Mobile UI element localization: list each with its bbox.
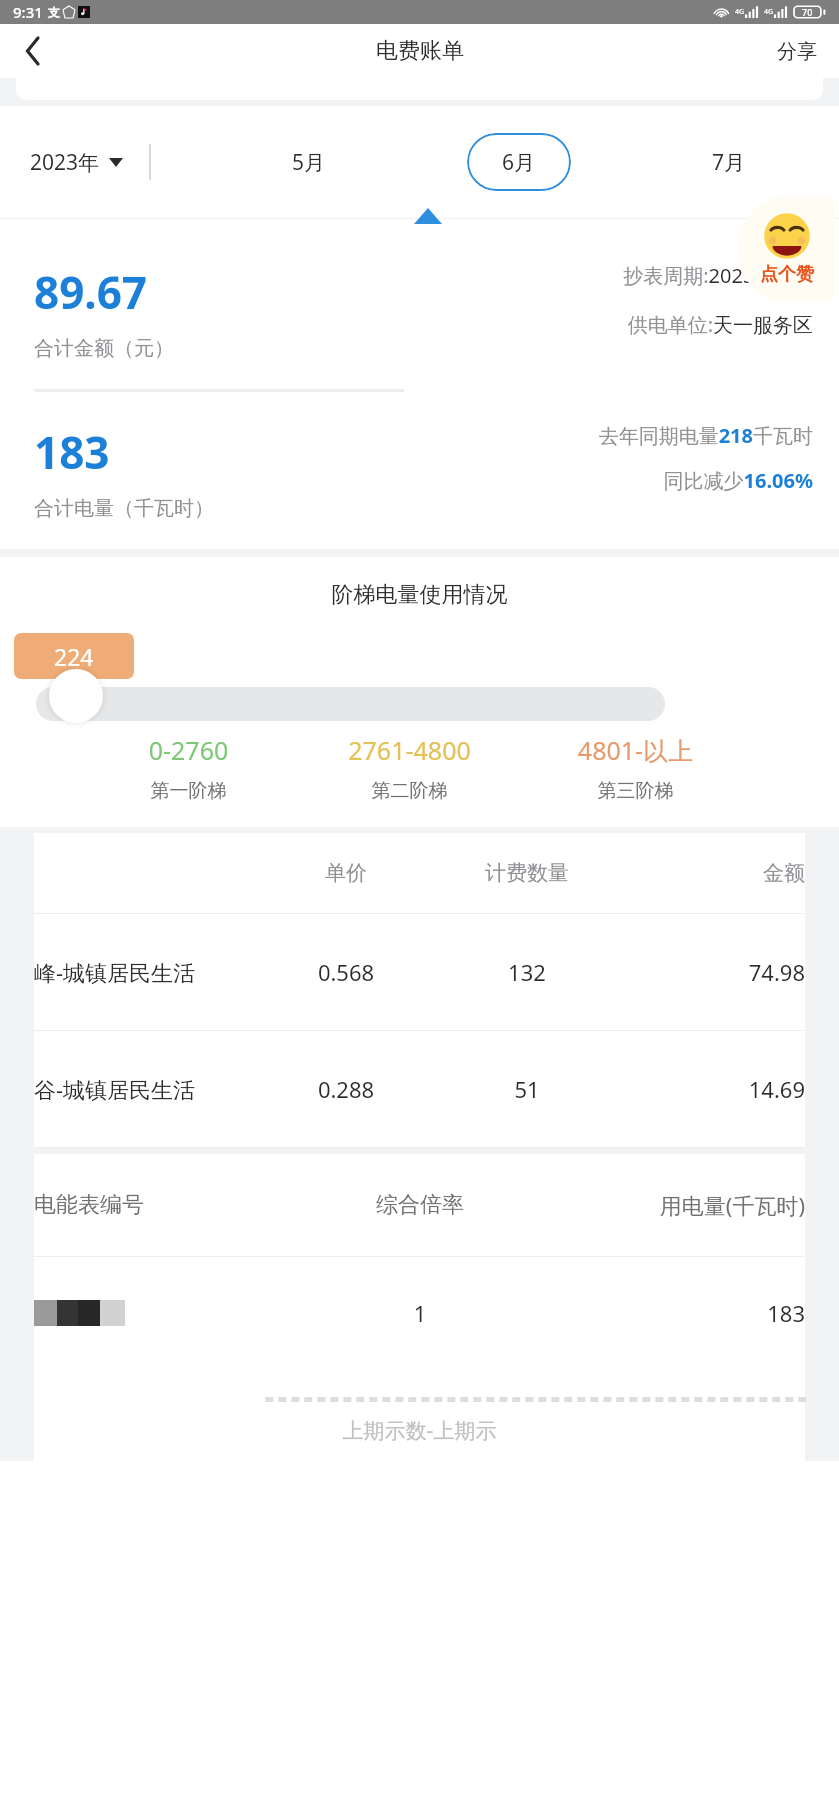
staticText: 点个赞 xyxy=(760,263,814,286)
staticText: 综合倍率 xyxy=(313,1191,527,1219)
staticText: 183 xyxy=(527,1298,805,1328)
staticText: 上期示数-上期示 xyxy=(34,1416,805,1445)
staticText: 抄表周期:2023-06-01 xyxy=(623,262,813,289)
staticText: 0.288 xyxy=(267,1074,425,1104)
button[interactable]: 4801-以上 xyxy=(530,733,741,803)
staticText: 0-2760 xyxy=(88,733,289,767)
staticText: 0.568 xyxy=(267,957,425,987)
staticText: 7月 xyxy=(712,148,746,177)
button[interactable]: 2761-4800 xyxy=(289,733,530,803)
button[interactable]: 点个赞 xyxy=(739,196,835,302)
button[interactable]: 0-2760 xyxy=(88,733,289,803)
staticText: 74.98 xyxy=(629,957,805,987)
staticText: 2023年 xyxy=(30,148,100,177)
button[interactable]: 峰-城镇居民生活 xyxy=(34,914,805,1030)
staticText: 单价 xyxy=(267,860,425,886)
button[interactable]: 分享 xyxy=(755,24,839,78)
staticText: 1 xyxy=(313,1298,527,1328)
staticText: 供电单位:天一服务区 xyxy=(627,311,813,338)
staticText: 合计电量（千瓦时） xyxy=(34,496,214,521)
staticText: 9:31 xyxy=(13,2,43,22)
staticText: 电费账单 xyxy=(376,37,464,65)
staticText: 4G xyxy=(735,7,745,17)
button[interactable]: 阶梯用量滑块 xyxy=(49,669,103,723)
staticText: 5月 xyxy=(292,148,326,177)
staticText: 电能表编号 xyxy=(34,1191,313,1219)
staticText: 6月 xyxy=(502,148,536,177)
staticText: 183 xyxy=(34,422,110,482)
staticText: 去年同期电量218千瓦时 xyxy=(598,422,813,449)
button[interactable]: 返回 xyxy=(0,24,66,78)
button[interactable]: 2023年 xyxy=(30,138,123,187)
staticText: 阶梯电量使用情况 xyxy=(0,581,839,609)
staticText: 支 xyxy=(48,5,60,20)
button[interactable]: 5月 xyxy=(267,133,351,191)
staticText: 第一阶梯 xyxy=(88,779,289,803)
staticText: 谷-城镇居民生活 xyxy=(34,1074,267,1104)
staticText: 132 xyxy=(425,957,629,987)
staticText: 合计金额（元） xyxy=(34,336,174,361)
staticText: 14.69 xyxy=(629,1074,805,1104)
button[interactable]: 1 xyxy=(34,1257,805,1369)
staticText: 70 xyxy=(802,6,813,18)
staticText: 4G xyxy=(764,7,774,17)
staticText: 89.67 xyxy=(34,262,148,322)
staticText: 51 xyxy=(425,1074,629,1104)
button[interactable]: 谷-城镇居民生活 xyxy=(34,1031,805,1147)
staticText: 分享 xyxy=(777,39,817,64)
staticText: 第三阶梯 xyxy=(530,779,741,803)
staticText: 第二阶梯 xyxy=(289,779,530,803)
button[interactable]: 6月 xyxy=(467,133,571,191)
staticText: 峰-城镇居民生活 xyxy=(34,957,267,987)
staticText: 4801-以上 xyxy=(530,733,741,767)
staticText: 2761-4800 xyxy=(289,733,530,767)
staticText: 224 xyxy=(54,641,94,672)
staticText: 金额 xyxy=(629,860,805,886)
staticText: 用电量(千瓦时) xyxy=(527,1190,805,1220)
staticText: 计费数量 xyxy=(425,860,629,886)
staticText: 同比减少16.06% xyxy=(663,467,813,494)
button[interactable]: 7月 xyxy=(687,133,771,191)
